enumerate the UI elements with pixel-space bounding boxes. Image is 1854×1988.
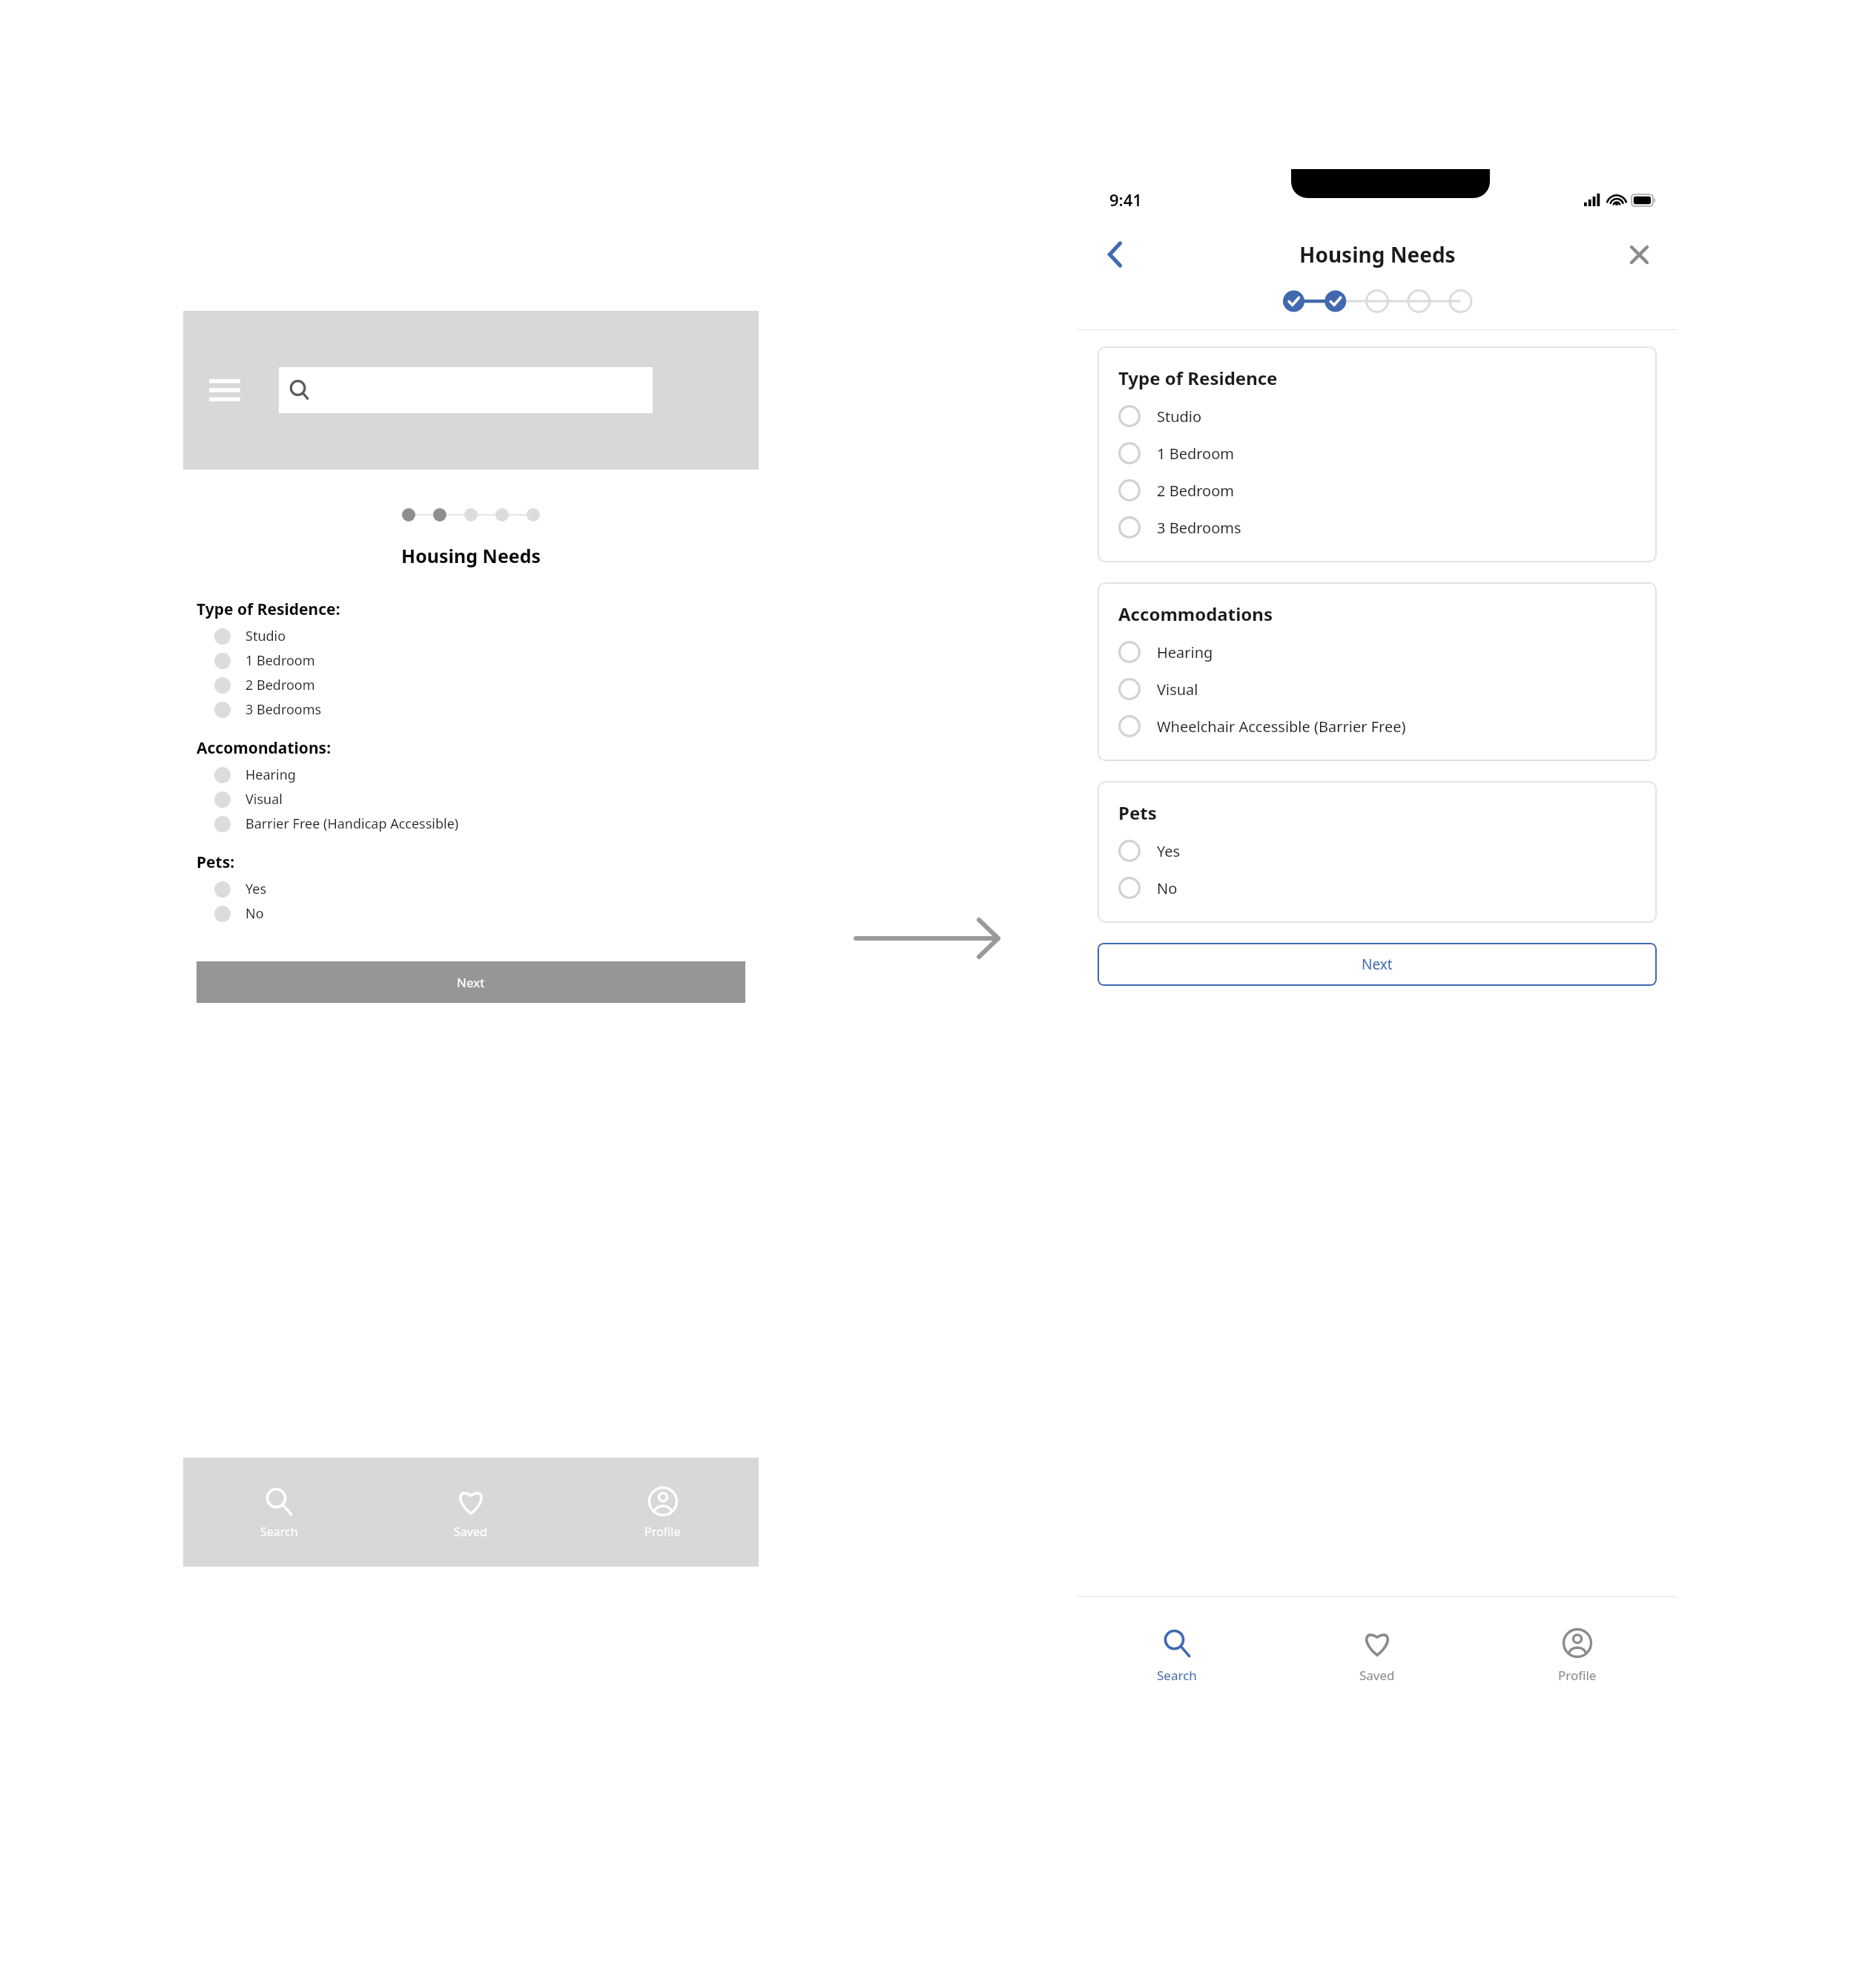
staticText: Yes — [245, 880, 267, 898]
staticText: Saved — [454, 1524, 487, 1540]
staticText: 3 Bedrooms — [1157, 518, 1241, 538]
staticText: Studio — [245, 627, 286, 645]
button[interactable]: Profile — [1477, 1597, 1677, 1708]
staticText: Search — [260, 1524, 298, 1540]
staticText: Wheelchair Accessible (Barrier Free) — [1157, 717, 1406, 737]
staticText: Type of Residence — [1118, 366, 1278, 390]
staticText: Visual — [245, 790, 283, 809]
staticText: Accommodations — [1118, 602, 1273, 626]
button[interactable]: Hearing — [1118, 633, 1642, 671]
staticText: Housing Needs — [1299, 240, 1456, 269]
button[interactable]: Visual — [1118, 671, 1642, 708]
staticText: 2 Bedroom — [245, 676, 315, 694]
staticText: Hearing — [245, 766, 296, 784]
button[interactable]: Next — [1098, 943, 1657, 986]
button[interactable]: Studio — [1118, 398, 1642, 435]
button[interactable]: Visual — [197, 787, 759, 812]
staticText: Profile — [644, 1524, 681, 1540]
button[interactable]: Saved — [375, 1458, 567, 1567]
staticText: Hearing — [1157, 642, 1213, 662]
staticText: Pets — [1118, 800, 1157, 825]
button[interactable]: Studio — [197, 624, 759, 648]
button[interactable]: 3 Bedrooms — [197, 697, 759, 722]
button[interactable]: Menu — [198, 363, 251, 417]
staticText: Search — [1157, 1667, 1197, 1684]
button[interactable]: 2 Bedroom — [1118, 472, 1642, 509]
button[interactable]: 2 Bedroom — [197, 673, 759, 697]
button[interactable]: Hearing — [197, 763, 759, 787]
button[interactable]: Back — [1096, 235, 1135, 274]
staticText: Profile — [1558, 1667, 1597, 1684]
button[interactable]: 3 Bedrooms — [1118, 509, 1642, 546]
button[interactable]: Barrier Free (Handicap Accessible) — [197, 812, 759, 836]
staticText: Type of Residence: — [197, 599, 340, 620]
staticText: Pets: — [197, 852, 235, 873]
button[interactable]: 1 Bedroom — [1118, 435, 1642, 472]
staticText: Next — [457, 974, 485, 991]
button[interactable]: Search — [1077, 1597, 1277, 1708]
button[interactable]: 1 Bedroom — [197, 648, 759, 673]
staticText: Yes — [1157, 841, 1181, 861]
button[interactable]: Yes — [1118, 832, 1642, 869]
button[interactable]: Next — [197, 961, 745, 1003]
staticText: Accomondations: — [197, 737, 331, 759]
button[interactable]: No — [197, 901, 759, 926]
button[interactable]: No — [1118, 869, 1642, 906]
button[interactable]: Yes — [197, 877, 759, 901]
button[interactable]: Close — [1620, 235, 1658, 274]
staticText: Visual — [1157, 679, 1198, 700]
staticText: No — [245, 904, 264, 923]
staticText: 1 Bedroom — [245, 651, 315, 670]
staticText: 3 Bedrooms — [245, 700, 322, 719]
staticText: Studio — [1157, 407, 1202, 427]
staticText: Next — [1362, 955, 1393, 974]
button[interactable]: Wheelchair Accessible (Barrier Free) — [1118, 708, 1642, 745]
staticText: Barrier Free (Handicap Accessible) — [245, 814, 459, 833]
staticText: Housing Needs — [401, 543, 541, 568]
staticText: No — [1157, 878, 1178, 898]
button[interactable]: Search — [183, 1458, 375, 1567]
button[interactable]: Saved — [1277, 1597, 1477, 1708]
staticText: Saved — [1359, 1667, 1395, 1684]
staticText: 2 Bedroom — [1157, 481, 1234, 501]
staticText: 9:41 — [1109, 188, 1142, 211]
button[interactable]: Search — [279, 367, 653, 413]
staticText: 1 Bedroom — [1157, 444, 1234, 464]
button[interactable]: Profile — [567, 1458, 759, 1567]
